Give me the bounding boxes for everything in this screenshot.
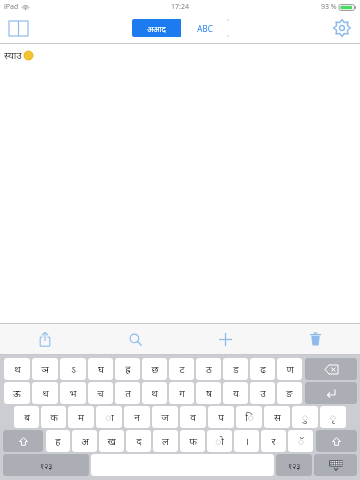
staticText: प [218,410,224,424]
button[interactable]: ख [99,430,124,452]
button[interactable]: ABC [181,19,229,37]
button[interactable]: त [115,382,140,404]
button[interactable]: ल [153,430,178,452]
staticText: ढ [260,362,266,376]
button[interactable]: १२३ [3,454,89,476]
staticText: ज [161,410,169,424]
staticText: ह [55,434,61,448]
staticText: छ [151,362,159,376]
button[interactable]: घ [88,358,113,380]
button[interactable]: Library [6,16,30,40]
button[interactable]: Backspace [305,358,357,380]
staticText: ख [107,434,116,448]
staticText: १२३ [40,460,53,471]
button[interactable]: ट [169,358,194,380]
button[interactable]: द [126,430,151,452]
staticText: ह्र [125,362,131,376]
staticText: ब [24,410,30,424]
staticText: ड [233,362,239,376]
button[interactable]: ु [292,406,318,428]
button[interactable]: न [124,406,150,428]
button[interactable]: Shift [316,430,357,452]
staticText: स्याउ [4,48,22,62]
staticText: ल [162,434,169,448]
button[interactable]: ज [152,406,178,428]
staticText: ॅ [298,434,304,448]
staticText: ट [179,362,185,376]
button[interactable]: ा [96,406,122,428]
staticText: ष [206,386,212,400]
staticText: ङ [286,386,293,400]
button[interactable]: क [41,406,66,428]
button[interactable]: Hide keyboard [314,454,357,476]
button[interactable]: ऊ [4,382,30,404]
button[interactable]: ण [277,358,302,380]
button[interactable]: थ [142,382,167,404]
button[interactable]: भ [60,382,86,404]
staticText: १२३ [288,460,301,471]
button[interactable]: ड [223,358,248,380]
button[interactable]: ढ [250,358,275,380]
button[interactable]: फ [180,430,205,452]
button[interactable]: च [88,382,113,404]
button[interactable]: Search [90,324,180,354]
staticText: ABC [197,23,213,34]
button[interactable]: ब [14,406,39,428]
button[interactable]: Add [180,324,270,354]
staticText: ो [215,434,224,448]
staticText: । [245,434,249,448]
button[interactable]: Return [305,382,357,404]
button[interactable]: ि [236,406,262,428]
staticText: ृ [330,410,336,424]
staticText: ु [302,410,308,424]
button[interactable]: १२३ [276,454,312,476]
staticText: उ [260,386,266,400]
button[interactable]: अ [72,430,97,452]
button[interactable]: ष [196,382,221,404]
staticText: भ [69,386,77,400]
button[interactable]: र [261,430,286,452]
button[interactable]: थ [4,358,30,380]
staticText: ि [245,410,254,424]
button[interactable]: अआद [132,19,180,37]
staticText: थ [14,362,21,376]
button[interactable]: । [234,430,259,452]
staticText: ञ [41,362,49,376]
staticText: ध [42,386,49,400]
button[interactable]: ह्र [115,358,140,380]
staticText: स [274,410,281,424]
button[interactable]: छ [142,358,167,380]
button[interactable]: ठ [196,358,221,380]
button[interactable]: म [68,406,94,428]
button[interactable]: व [180,406,206,428]
staticText: 93 % [321,2,337,12]
staticText: न [134,410,140,424]
staticText: ग [179,386,185,400]
button[interactable]: ञ [32,358,58,380]
button[interactable]: ृ [320,406,346,428]
staticText: अआद [147,23,166,34]
button[interactable]: स [264,406,290,428]
button[interactable]: ॅ [288,430,313,452]
button[interactable]: Settings [329,15,355,41]
button[interactable]: Shift [3,430,43,452]
button[interactable]: प [208,406,234,428]
button[interactable]: ह [46,430,70,452]
button[interactable]: Delete [270,324,360,354]
button[interactable]: ग [169,382,194,404]
staticText: द [136,434,142,448]
staticText: ण [286,362,294,376]
staticText: च [97,386,104,400]
button[interactable]: Share [0,324,90,354]
staticText: क [50,410,58,424]
button[interactable]: ऽ [60,358,86,380]
button[interactable]: ो [207,430,232,452]
button[interactable]: य [223,382,248,404]
staticText: य [233,386,239,400]
staticText: म [78,410,84,424]
button[interactable]: ङ [277,382,302,404]
button[interactable]: उ [250,382,275,404]
button[interactable]: ध [32,382,58,404]
staticText: फ [189,434,197,448]
